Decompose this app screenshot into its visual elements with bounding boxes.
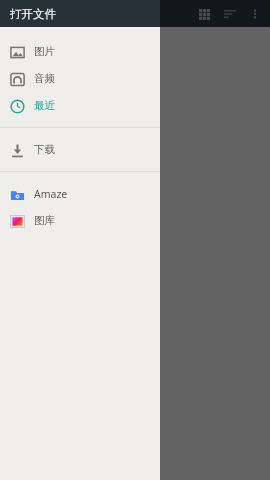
staticText: 打开文件 <box>10 7 56 21</box>
button[interactable]: 图片 <box>0 38 160 65</box>
button[interactable]: More options <box>244 3 266 25</box>
button[interactable]: 最近 <box>0 92 160 119</box>
button[interactable]: Sort <box>218 2 242 26</box>
staticText: 音频 <box>34 72 55 85</box>
button[interactable]: Amaze <box>0 180 160 207</box>
button[interactable]: 下载 <box>0 136 160 163</box>
button[interactable]: Grid view <box>192 2 216 26</box>
button[interactable]: 图库 <box>0 207 160 234</box>
staticText: 下载 <box>34 143 55 156</box>
staticText: 最近 <box>34 99 55 112</box>
staticText: 图库 <box>34 214 55 227</box>
staticText: 图片 <box>34 45 55 58</box>
button[interactable]: 音频 <box>0 65 160 92</box>
staticText: Amaze <box>34 187 68 201</box>
